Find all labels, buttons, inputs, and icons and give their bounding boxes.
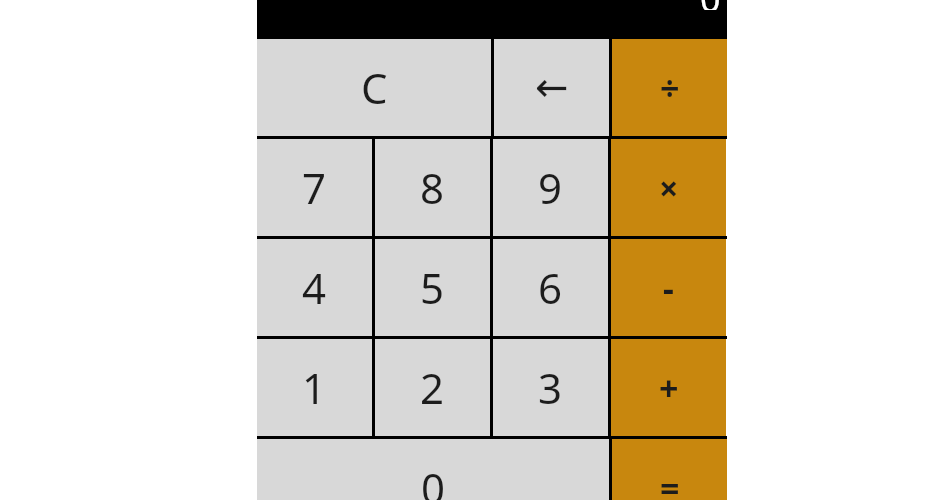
staticText: 6 [538,259,563,316]
button[interactable]: 1 [257,339,372,436]
staticText: = [660,465,680,500]
staticText: 3 [538,359,563,416]
button[interactable]: 6 [493,239,608,336]
staticText: 1 [302,359,327,416]
button[interactable]: + [611,339,726,436]
button[interactable]: 2 [375,339,490,436]
staticText: 5 [420,259,445,316]
staticText: 8 [420,159,445,216]
staticText: ← [535,64,569,111]
staticText: 7 [302,159,327,216]
button[interactable]: ← [494,39,609,136]
button[interactable]: ÷ [612,39,727,136]
staticText: 2 [420,359,445,416]
staticText: 9 [538,159,563,216]
button[interactable]: 3 [493,339,608,436]
staticText: + [659,365,679,411]
button[interactable]: × [611,139,726,236]
button[interactable]: 9 [493,139,608,236]
staticText: 0 [700,0,721,10]
button[interactable]: 7 [257,139,372,236]
staticText: 4 [302,259,327,316]
staticText: - [663,265,674,311]
button[interactable]: = [612,439,727,500]
button[interactable]: 4 [257,239,372,336]
staticText: C [361,59,388,116]
button[interactable]: 0 [257,439,609,500]
button[interactable]: C [257,39,491,136]
staticText: × [659,165,679,211]
button[interactable]: - [611,239,726,336]
staticText: ÷ [660,65,680,111]
button[interactable]: 5 [375,239,490,336]
staticText: 0 [421,459,446,500]
button[interactable]: 8 [375,139,490,236]
